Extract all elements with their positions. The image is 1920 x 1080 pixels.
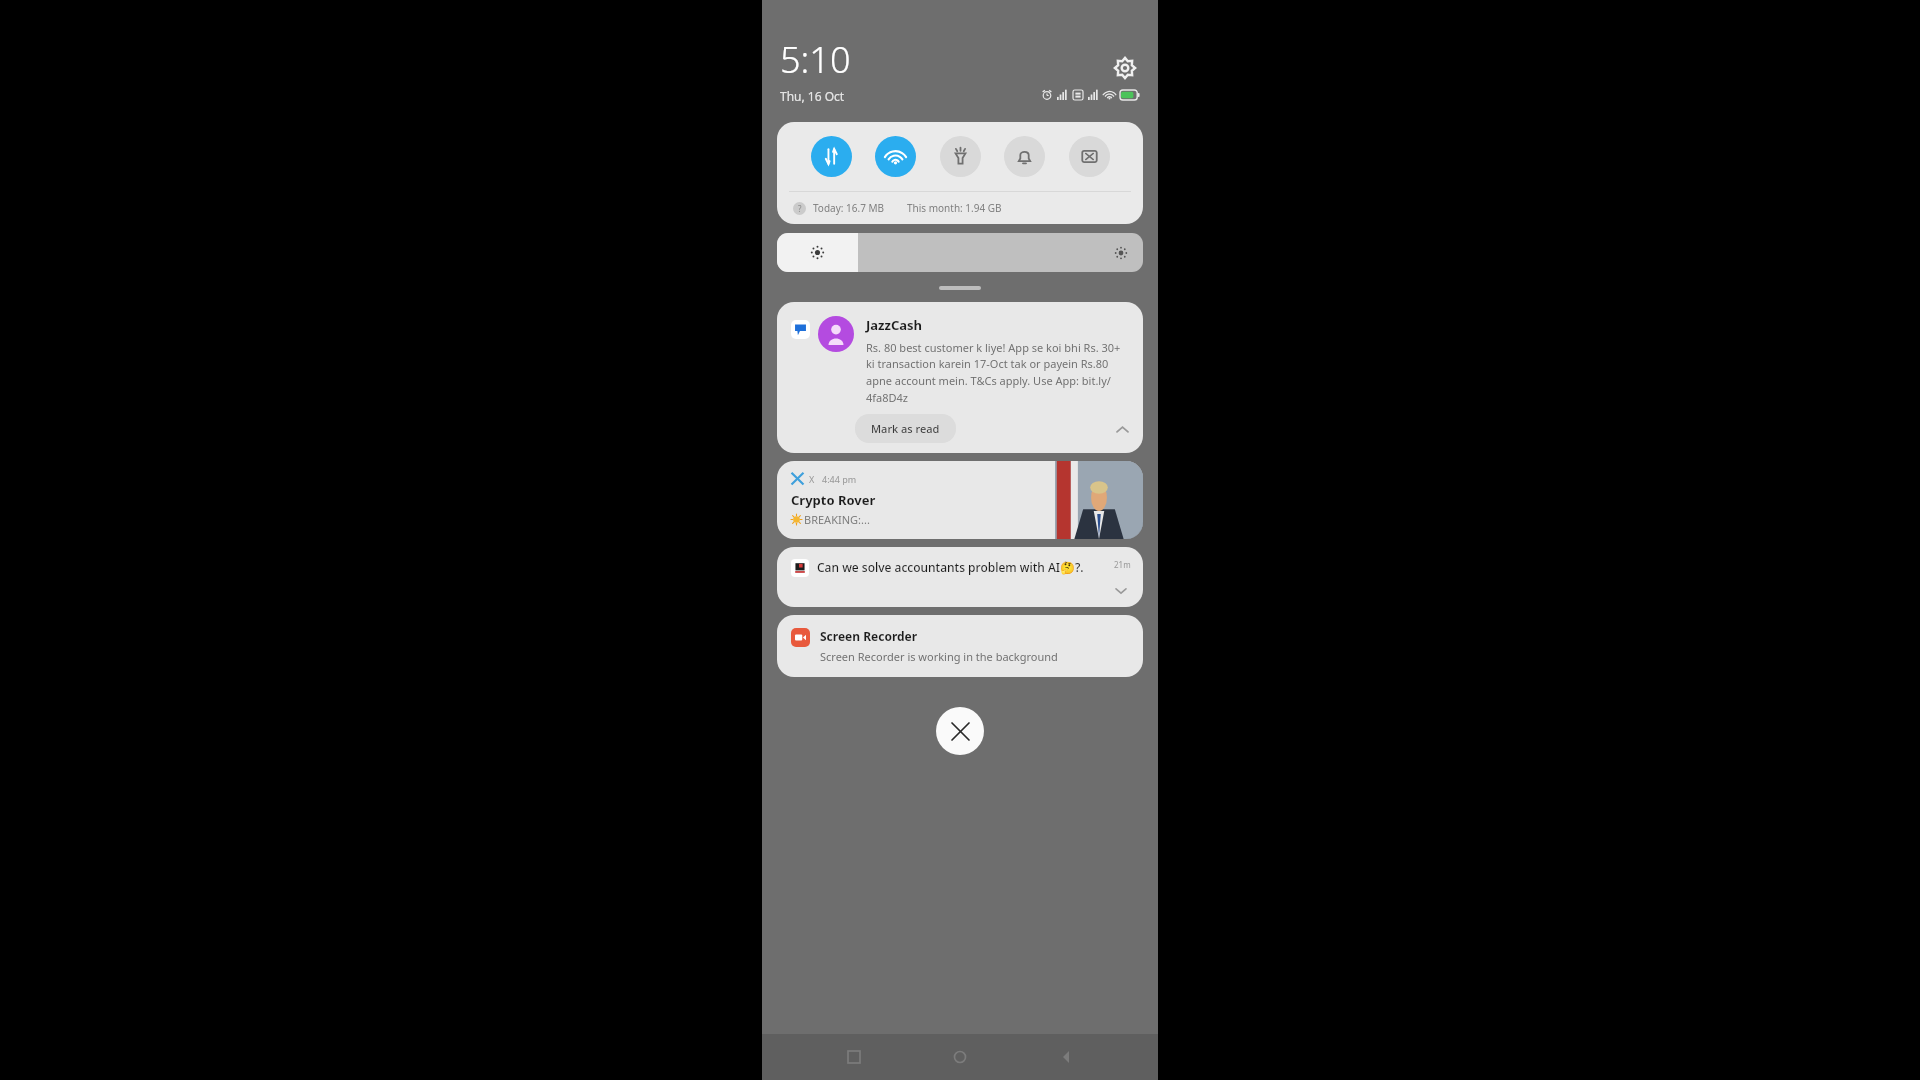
button[interactable]: Screen Recorder (777, 615, 1143, 677)
button[interactable]: Brightness (777, 233, 1143, 272)
button[interactable]: Screenshot (1069, 136, 1110, 177)
button[interactable]: Flashlight (940, 136, 981, 177)
button[interactable]: Home (946, 1043, 974, 1071)
button[interactable]: Clear all notifications (936, 707, 984, 755)
button[interactable]: X (777, 461, 1143, 539)
staticText: BREAKING:... (804, 512, 870, 527)
button[interactable]: Can we solve accountants problem with AI… (777, 547, 1143, 607)
staticText: Screen Recorder is working in the backgr… (820, 649, 1058, 664)
button[interactable]: Recents (840, 1043, 868, 1071)
staticText: JazzCash (866, 316, 923, 334)
staticText: Mark as read (871, 421, 940, 436)
staticText: 4:44 pm (822, 473, 857, 485)
button[interactable]: Back (1052, 1043, 1080, 1071)
button[interactable]: Mark as read (855, 414, 956, 443)
staticText: Screen Recorder (820, 628, 918, 644)
staticText: ? (798, 203, 802, 214)
button[interactable]: Settings (1112, 55, 1138, 81)
staticText: X (809, 473, 815, 485)
staticText: 5:10 (780, 35, 851, 84)
button[interactable]: Mobile data (811, 136, 852, 177)
staticText: 21m (1114, 559, 1131, 570)
button[interactable]: JazzCash (777, 302, 1143, 453)
staticText: Thu, 16 Oct (780, 88, 845, 104)
button[interactable]: Silent (1004, 136, 1045, 177)
button[interactable]: Expand (1113, 583, 1129, 599)
staticText: Crypto Rover (791, 491, 876, 509)
staticText: Rs. 80 best customer k liye! App se koi … (866, 340, 1129, 406)
button[interactable]: Collapse (1113, 420, 1131, 438)
button[interactable]: Wi-Fi (875, 136, 916, 177)
staticText: This month: 1.94 GB (907, 201, 1002, 215)
staticText: Can we solve accountants problem with AI… (817, 559, 1108, 575)
staticText: Today: 16.7 MB (813, 201, 885, 215)
